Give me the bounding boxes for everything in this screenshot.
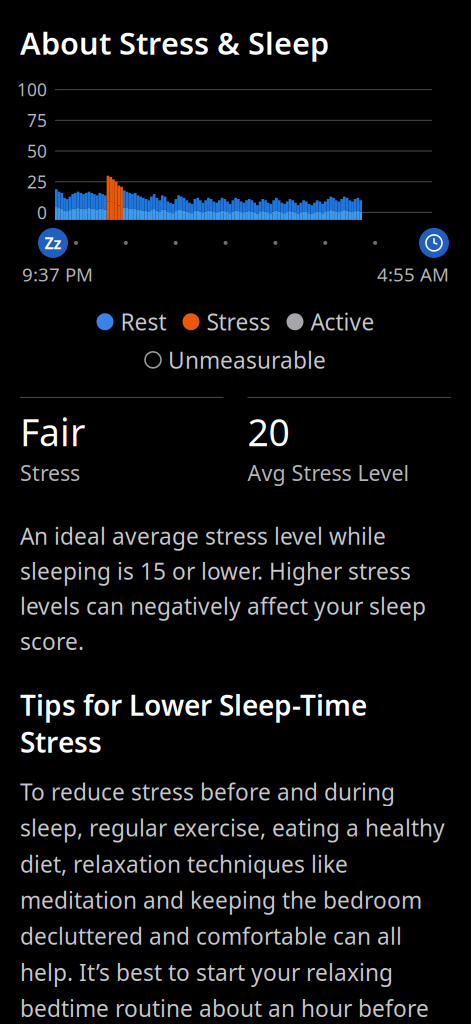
- staticText: Zz: [44, 232, 61, 253]
- staticText: 4:55 AM: [377, 262, 449, 287]
- staticText: Avg Stress Level: [247, 458, 409, 487]
- staticText: Fair: [20, 407, 85, 456]
- staticText: Active: [310, 307, 374, 337]
- staticText: 75: [27, 109, 47, 132]
- staticText: Stress: [206, 307, 270, 337]
- staticText: Unmeasurable: [168, 345, 326, 375]
- staticText: 25: [27, 170, 47, 193]
- staticText: 9:37 PM: [22, 262, 93, 287]
- staticText: An ideal average stress level while slee…: [20, 521, 426, 656]
- staticText: 0: [37, 201, 47, 224]
- staticText: Stress: [20, 458, 80, 487]
- staticText: Rest: [120, 307, 166, 337]
- staticText: To reduce stress before and during sleep…: [20, 777, 451, 1024]
- staticText: About Stress & Sleep: [20, 22, 329, 63]
- staticText: 100: [17, 78, 47, 101]
- staticText: 20: [247, 407, 289, 456]
- staticText: Tips for Lower Sleep-Time Stress: [20, 686, 367, 761]
- staticText: 50: [27, 139, 47, 162]
